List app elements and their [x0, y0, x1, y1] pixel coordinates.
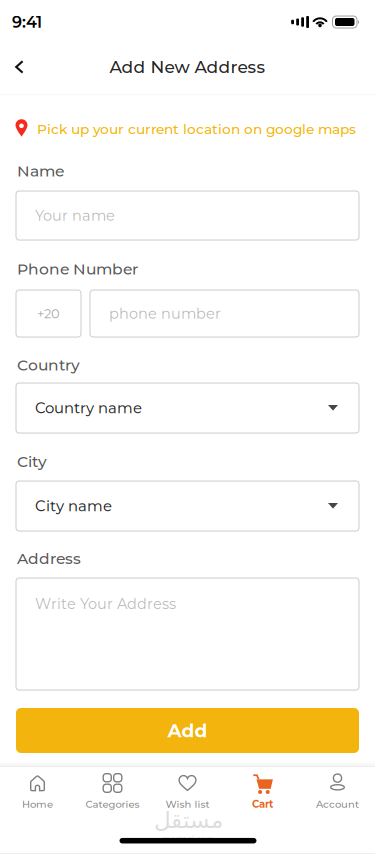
- staticText: Pick up your current location on google …: [37, 121, 356, 137]
- button[interactable]: Home: [0, 771, 75, 810]
- button[interactable]: Add: [16, 708, 359, 753]
- staticText: mostaql.com: [162, 833, 214, 843]
- button[interactable]: Pick up your current location on google …: [0, 118, 375, 140]
- button[interactable]: City name: [16, 481, 359, 531]
- staticText: Phone Number: [17, 260, 138, 278]
- staticText: Categories: [85, 798, 139, 810]
- staticText: Add New Address: [109, 57, 265, 77]
- button[interactable]: Write Your Address: [16, 578, 359, 690]
- button[interactable]: Your name: [16, 191, 359, 240]
- button[interactable]: phone number: [90, 290, 359, 337]
- staticText: 9:41: [12, 12, 42, 32]
- staticText: phone number: [109, 305, 221, 322]
- staticText: Home: [22, 798, 53, 810]
- button[interactable]: Country name: [16, 383, 359, 433]
- staticText: Your name: [35, 207, 115, 224]
- staticText: Country: [17, 356, 80, 374]
- staticText: مستقل: [153, 807, 222, 833]
- staticText: Write Your Address: [35, 595, 176, 613]
- button[interactable]: Wish list: [150, 771, 225, 810]
- staticText: Account: [316, 798, 359, 810]
- button[interactable]: Cart: [225, 771, 300, 810]
- staticText: City name: [35, 497, 112, 515]
- staticText: Add: [167, 719, 207, 742]
- button[interactable]: Back: [0, 44, 36, 90]
- staticText: Name: [17, 162, 64, 180]
- staticText: Wish list: [165, 798, 209, 810]
- button[interactable]: +20: [16, 290, 81, 337]
- staticText: Address: [17, 549, 81, 568]
- staticText: City: [17, 452, 47, 471]
- staticText: +20: [37, 306, 60, 321]
- staticText: Country name: [35, 399, 142, 417]
- button[interactable]: Account: [300, 771, 375, 810]
- staticText: Cart: [252, 798, 273, 810]
- button[interactable]: Categories: [75, 771, 150, 810]
